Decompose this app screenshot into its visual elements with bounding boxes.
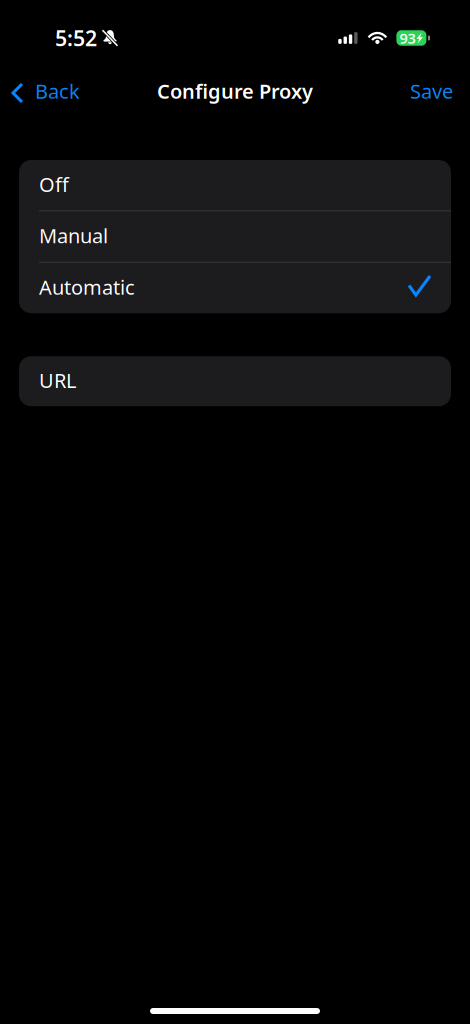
staticText: URL [39, 367, 76, 393]
staticText: 5:52 [55, 24, 97, 52]
button[interactable]: Automatic [19, 263, 451, 313]
button[interactable]: Back [0, 69, 94, 113]
button[interactable]: Manual [19, 211, 451, 262]
staticText: Manual [39, 222, 108, 249]
staticText: Automatic [39, 274, 135, 300]
staticText: Off [39, 171, 69, 197]
button[interactable]: URL [19, 356, 451, 406]
staticText: Save [410, 78, 453, 104]
staticText: Configure Proxy [157, 78, 313, 104]
staticText: Back [35, 78, 80, 104]
button[interactable]: Save [391, 69, 470, 113]
staticText: 93 [399, 28, 415, 48]
button[interactable]: Off [19, 160, 451, 210]
